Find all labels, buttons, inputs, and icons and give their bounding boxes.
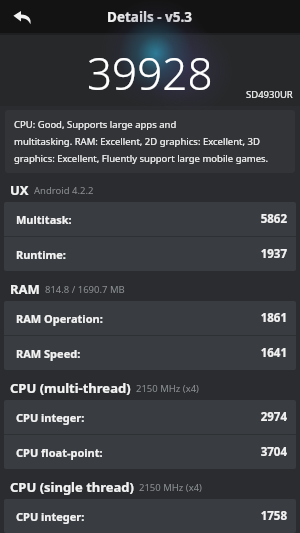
staticText: Details - v5.3 <box>107 8 193 26</box>
staticText: Android 4.2.2 <box>34 184 94 197</box>
button[interactable]: RAM Operation: <box>4 301 296 335</box>
staticText: 1641 <box>260 345 287 361</box>
staticText: SD4930UR <box>246 88 293 101</box>
staticText: Multitask: <box>16 212 72 227</box>
staticText: Runtime: <box>16 247 66 262</box>
staticText: UX <box>10 181 29 199</box>
staticText: RAM <box>10 280 40 298</box>
button[interactable]: Multitask: <box>4 202 296 236</box>
staticText: 2974 <box>260 409 287 425</box>
staticText: 2150 MHz (x4) <box>136 382 199 395</box>
staticText: 39928 <box>87 43 213 103</box>
button[interactable]: Back <box>0 0 44 33</box>
staticText: CPU integer: <box>16 410 85 425</box>
staticText: 1758 <box>260 508 287 524</box>
button[interactable]: Runtime: <box>4 237 296 271</box>
button[interactable]: CPU integer: <box>4 499 296 533</box>
staticText: 814.8 / 1690.7 MB <box>45 283 125 296</box>
button[interactable]: RAM Speed: <box>4 336 296 370</box>
button[interactable]: CPU integer: <box>4 400 296 434</box>
button[interactable]: CPU float-point: <box>4 435 296 469</box>
staticText: 1861 <box>260 310 287 326</box>
staticText: 3704 <box>260 444 287 460</box>
staticText: CPU: Good, Supports large apps and multi… <box>14 118 269 165</box>
staticText: CPU (single thread) <box>10 478 134 496</box>
staticText: CPU float-point: <box>16 445 103 460</box>
staticText: RAM Operation: <box>16 311 103 326</box>
staticText: RAM Speed: <box>16 346 81 361</box>
staticText: 1937 <box>260 246 287 262</box>
staticText: 2150 MHz (x4) <box>139 481 202 494</box>
staticText: 5862 <box>260 211 287 227</box>
staticText: CPU (multi-thread) <box>10 379 131 397</box>
staticText: CPU integer: <box>16 509 85 524</box>
